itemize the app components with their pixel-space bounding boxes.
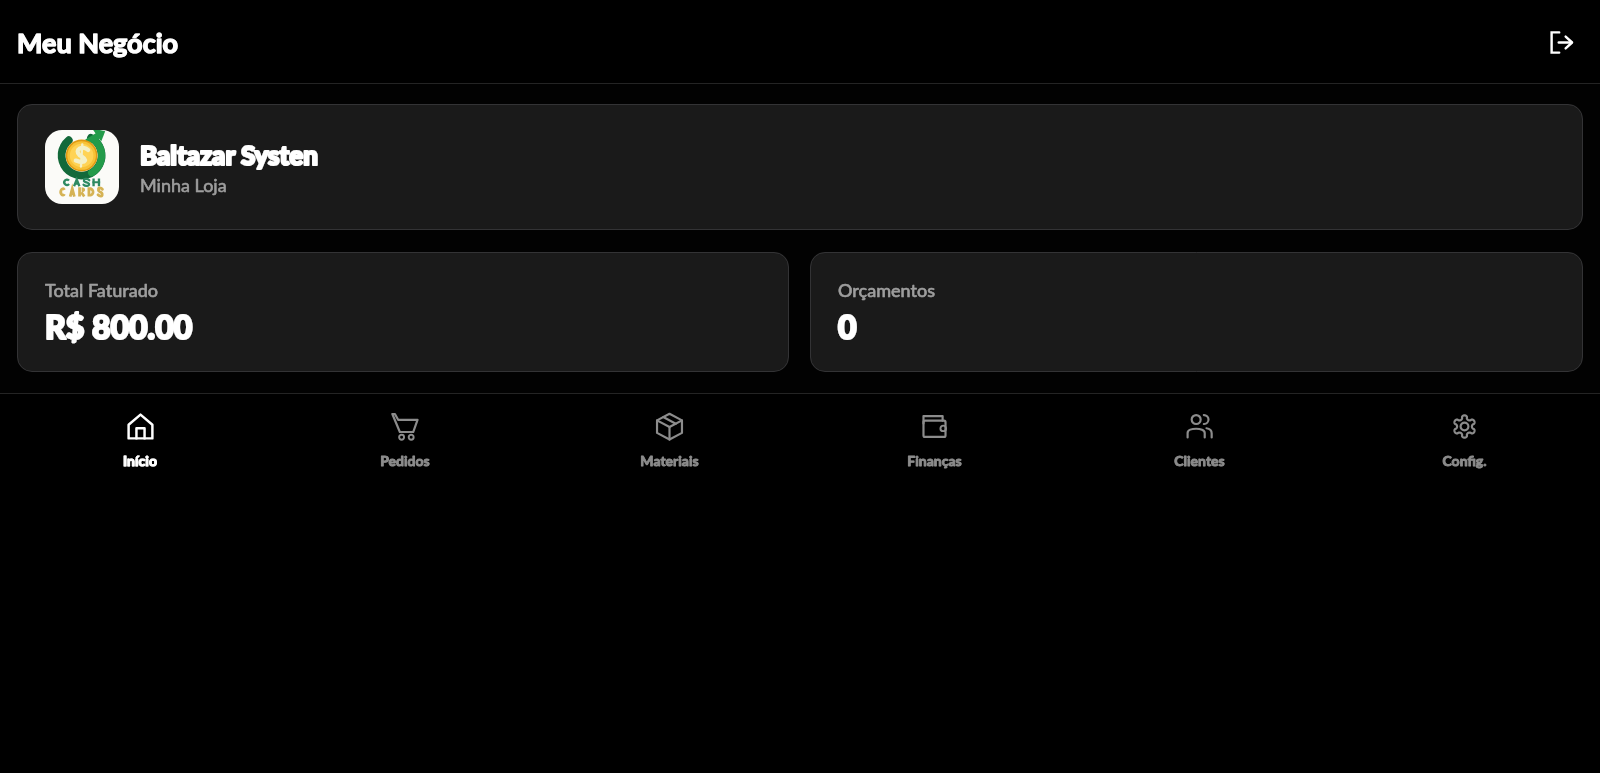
button[interactable]: Pedidos bbox=[272, 394, 537, 773]
staticText: Baltazar Systen bbox=[140, 139, 318, 170]
staticText: Config. bbox=[1442, 452, 1487, 469]
staticText: R$ 800.00 bbox=[45, 307, 193, 345]
staticText: 0 bbox=[838, 307, 857, 345]
staticText: Início bbox=[123, 452, 157, 469]
staticText: Clientes bbox=[1174, 452, 1225, 469]
button[interactable]: Finanças bbox=[802, 394, 1067, 773]
button[interactable]: Config. bbox=[1332, 394, 1597, 773]
staticText: Baltazar Systen bbox=[140, 139, 318, 170]
staticText: R$ 800.00 bbox=[45, 307, 193, 345]
button[interactable]: Início bbox=[8, 394, 272, 773]
staticText: Orçamentos bbox=[838, 279, 936, 301]
staticText: 0 bbox=[838, 307, 857, 345]
button[interactable]: Orçamentos bbox=[810, 252, 1583, 372]
button[interactable]: Baltazar Systen bbox=[17, 104, 1583, 230]
staticText: Minha Loja bbox=[140, 174, 227, 196]
staticText: Orçamentos bbox=[838, 279, 936, 301]
staticText: Pedidos bbox=[380, 452, 430, 469]
staticText: Meu Negócio bbox=[17, 26, 179, 58]
staticText: Total Faturado bbox=[45, 279, 159, 301]
staticText: Finanças bbox=[907, 452, 962, 469]
staticText: Materiais bbox=[640, 452, 699, 469]
staticText: Início bbox=[123, 452, 157, 469]
staticText: Minha Loja bbox=[140, 174, 227, 196]
staticText: Finanças bbox=[907, 452, 962, 469]
staticText: Meu Negócio bbox=[17, 26, 179, 58]
button[interactable]: Sair bbox=[1539, 20, 1583, 64]
button[interactable]: Clientes bbox=[1067, 394, 1332, 773]
staticText: Config. bbox=[1442, 452, 1487, 469]
staticText: Pedidos bbox=[380, 452, 430, 469]
staticText: Clientes bbox=[1174, 452, 1225, 469]
button[interactable]: Materiais bbox=[537, 394, 802, 773]
staticText: Total Faturado bbox=[45, 279, 159, 301]
staticText: Materiais bbox=[640, 452, 699, 469]
button[interactable]: Total Faturado bbox=[17, 252, 789, 372]
